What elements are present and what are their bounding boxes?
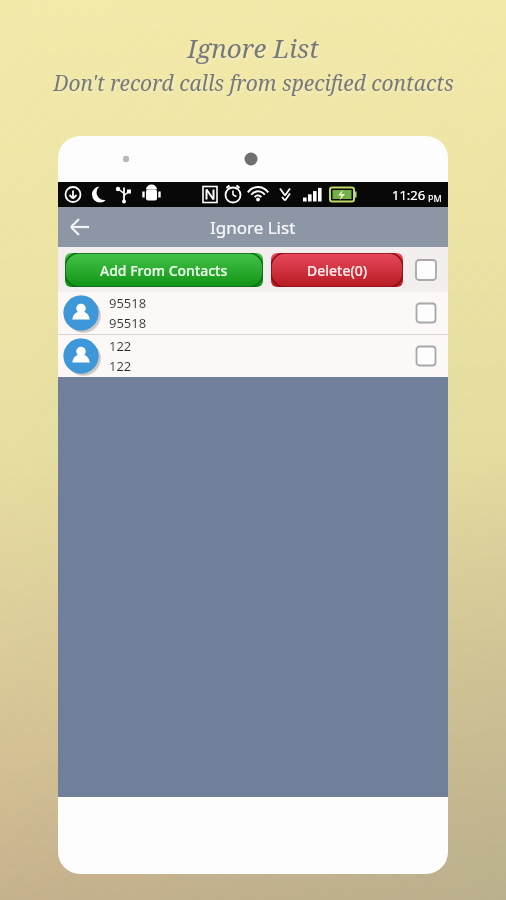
button[interactable]: Delete(0) [271,253,403,287]
button[interactable]: 95518 [58,292,448,334]
button[interactable]: Select 122 [409,339,443,373]
staticText: Delete(0) [307,261,368,280]
staticText: Add From Contacts [100,261,228,280]
button[interactable]: 122 [58,335,448,377]
staticText: PM [428,192,442,204]
button[interactable]: Add From Contacts [65,253,263,287]
staticText: 11:26 [392,186,426,204]
staticText: 95518 [109,294,147,312]
button[interactable]: Select 95518 [409,296,443,330]
staticText: 95518 [109,314,147,332]
staticText: Don't record calls from specified contac… [53,69,454,98]
staticText: 122 [109,357,132,375]
button[interactable]: Select all [411,255,441,285]
staticText: 122 [109,337,132,355]
staticText: Ignore List [210,216,296,239]
staticText: Ignore List [187,30,319,65]
button[interactable]: Back [58,207,102,247]
